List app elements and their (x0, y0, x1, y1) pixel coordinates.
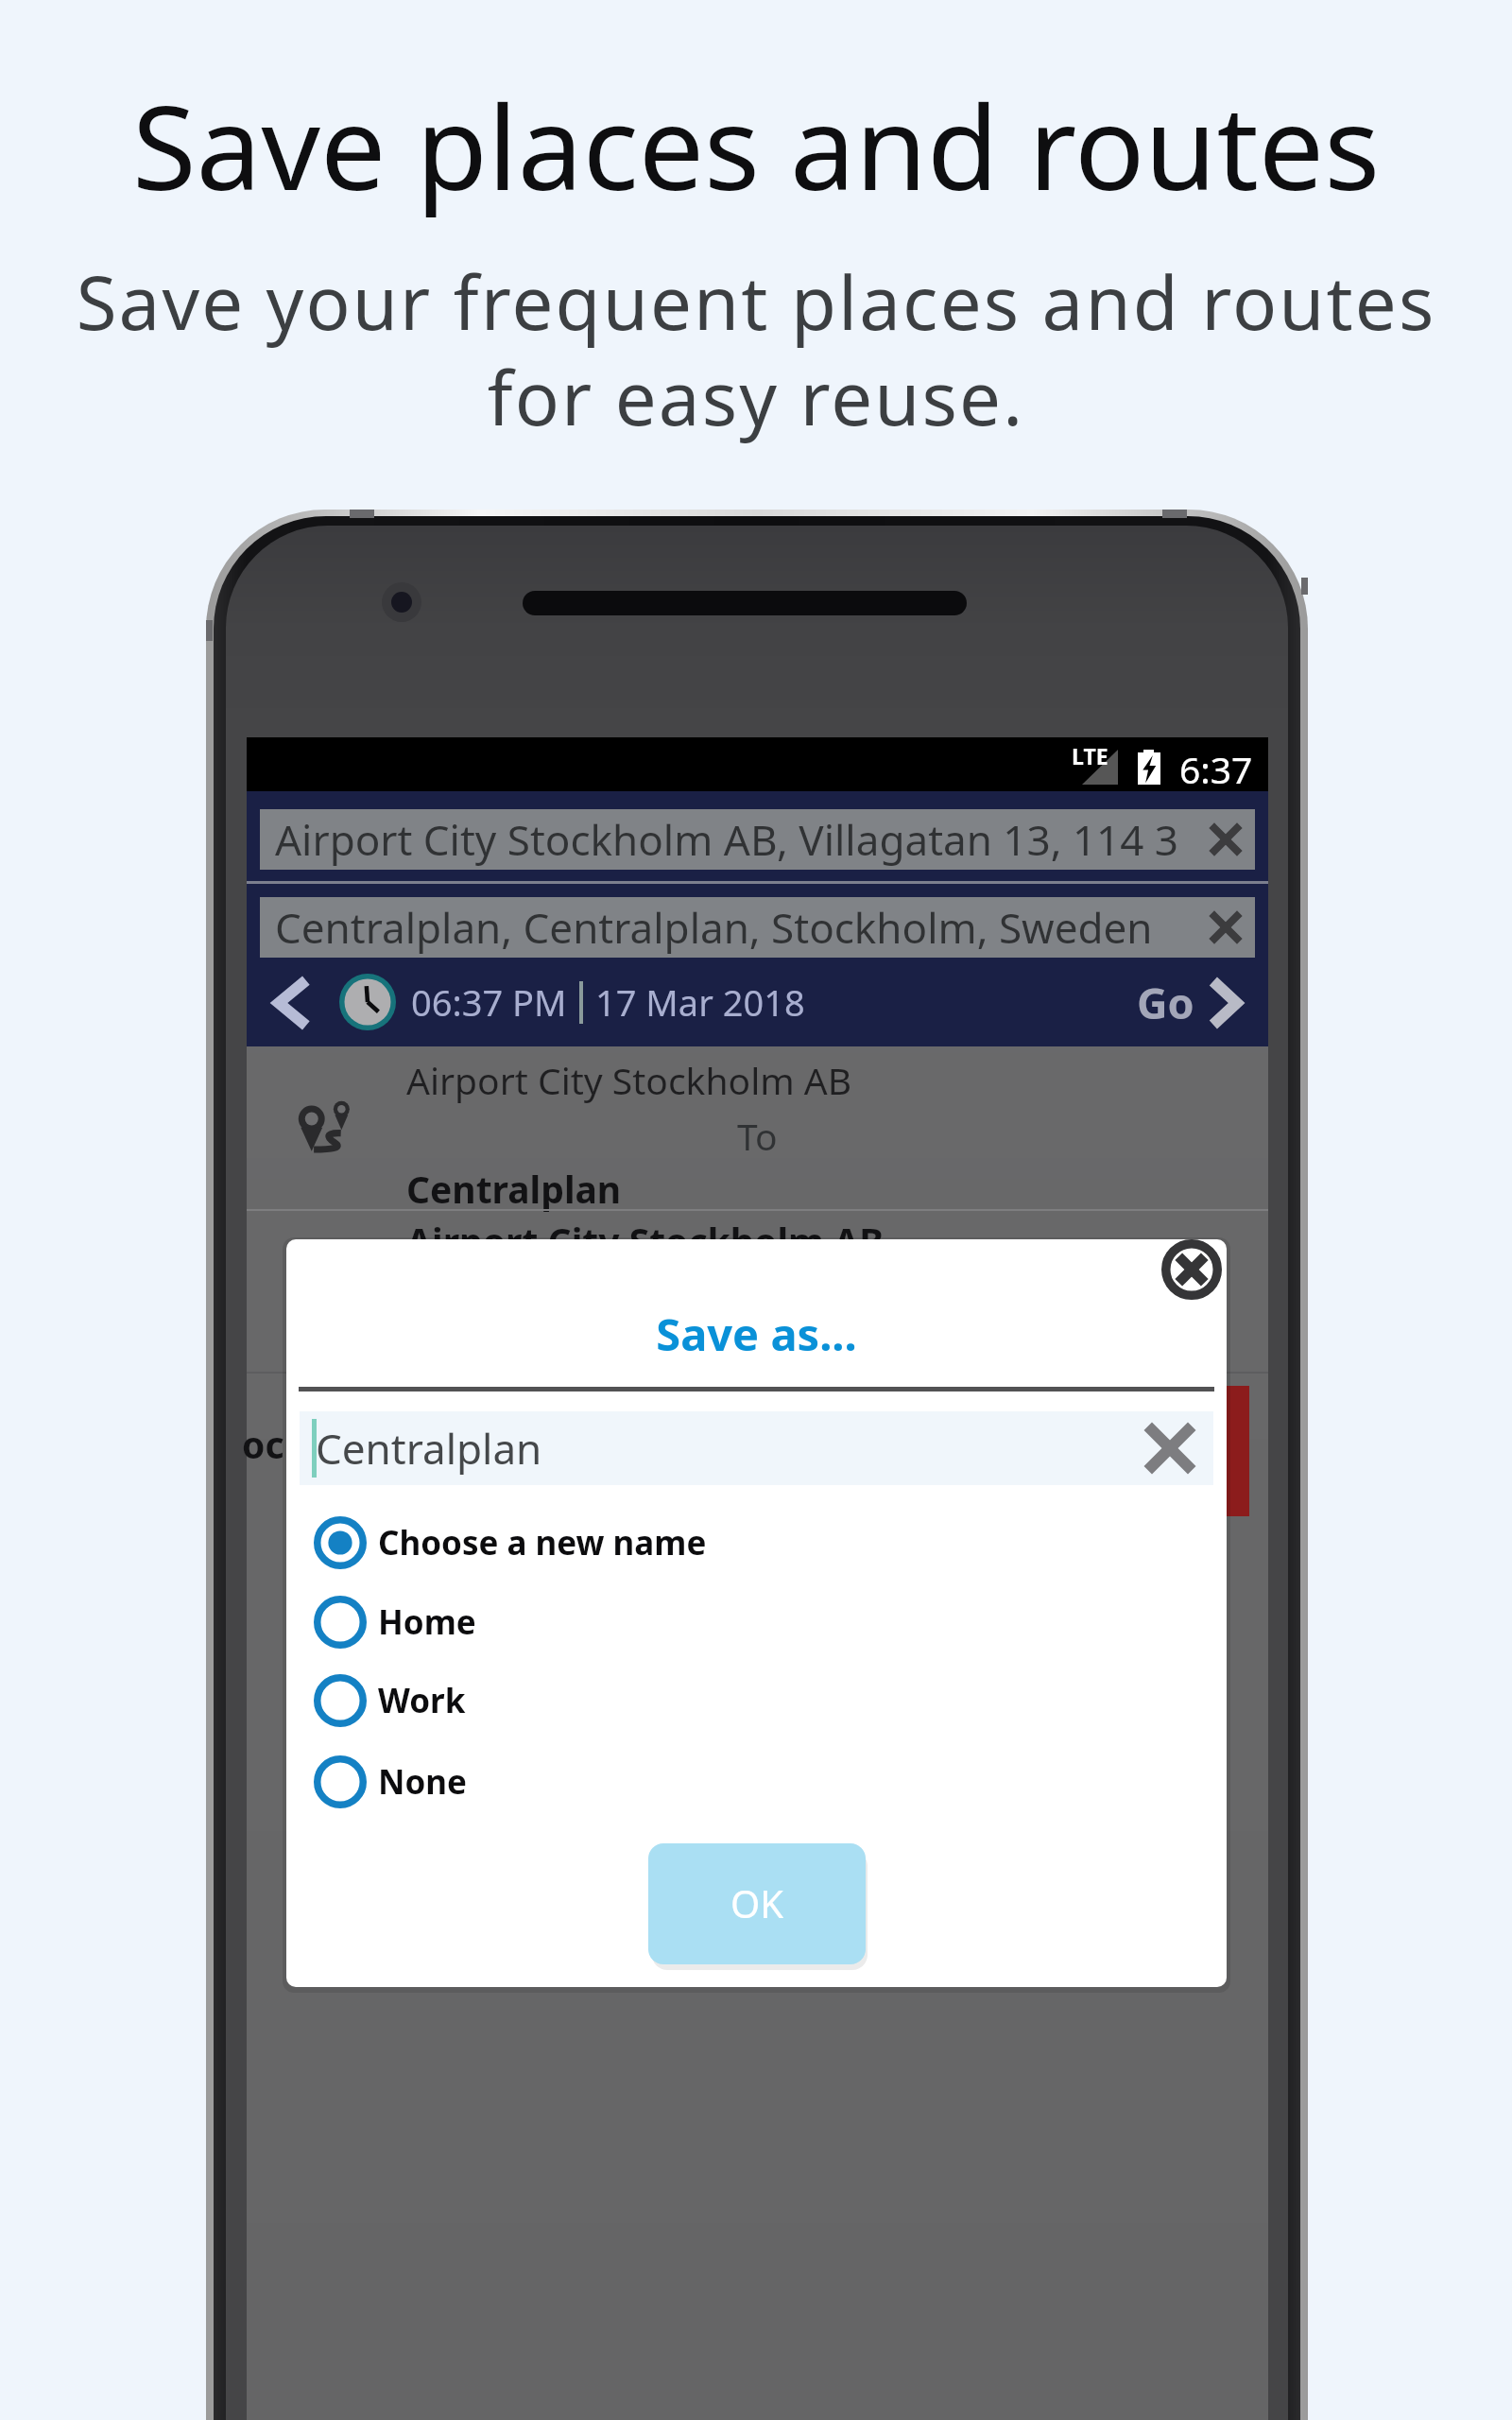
staticText: To (737, 1111, 778, 1161)
staticText: ock (242, 1419, 307, 1469)
button[interactable]: Close dialog (1156, 1239, 1227, 1305)
button[interactable]: Clear text (1126, 1411, 1213, 1485)
staticText: Airport City Stockholm AB, Villagatan 13… (275, 811, 1196, 868)
button[interactable]: Go (1137, 974, 1268, 1031)
staticText: Airport City Stockholm AB (406, 1055, 852, 1105)
staticText: Go (1137, 974, 1194, 1031)
staticText: Home (378, 1599, 476, 1645)
staticText: Save as... (286, 1304, 1227, 1364)
button[interactable]: 06:37 PM (339, 958, 805, 1046)
button[interactable]: Home (286, 1582, 1227, 1662)
staticText: Save your frequent places and routes for… (0, 251, 1512, 447)
button[interactable]: Airport City Stockholm AB, Villagatan 13… (260, 809, 1255, 870)
button[interactable]: Centralplan (300, 1411, 1213, 1485)
staticText: Centralplan (316, 1420, 1126, 1477)
staticText: Work (378, 1678, 466, 1723)
staticText: None (378, 1759, 467, 1805)
staticText: Airport City Stockholm AB (406, 1216, 885, 1266)
staticText: OK (730, 1877, 783, 1928)
button[interactable]: Previous (247, 961, 335, 1044)
button[interactable]: Choose a new name (286, 1503, 1227, 1582)
button[interactable]: Clear address (1196, 809, 1255, 870)
staticText: 06:37 PM (411, 977, 567, 1027)
staticText: Choose a new name (378, 1520, 707, 1565)
button[interactable]: Work (286, 1661, 1227, 1740)
staticText: LTE (1072, 741, 1108, 770)
staticText: Centralplan, Centralplan, Stockholm, Swe… (275, 899, 1196, 956)
button[interactable]: None (286, 1742, 1227, 1822)
staticText: Save places and routes (0, 66, 1512, 225)
staticText: 17 Mar 2018 (595, 977, 805, 1027)
button[interactable]: Clear address (1196, 897, 1255, 958)
staticText: 6:37 (1179, 744, 1253, 794)
button[interactable]: OK (648, 1843, 866, 1964)
button[interactable]: Centralplan, Centralplan, Stockholm, Swe… (260, 897, 1255, 958)
staticText: Centralplan (406, 1164, 622, 1214)
